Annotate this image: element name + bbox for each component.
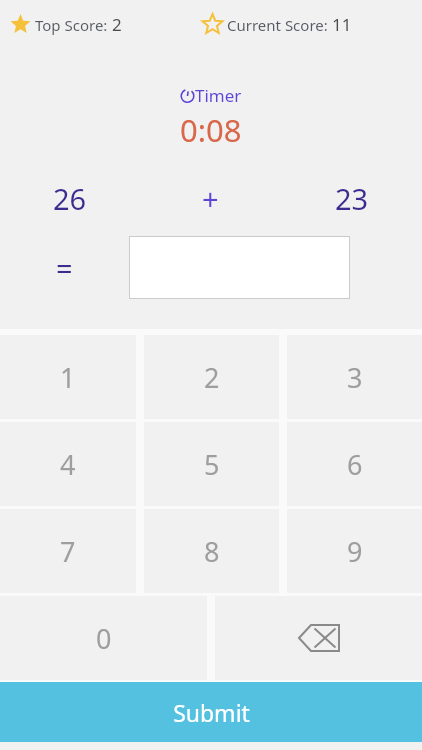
staticText: Timer [195, 84, 242, 107]
button[interactable]: 5 [144, 422, 279, 506]
button[interactable]: 7 [0, 509, 136, 593]
staticText: 0 [96, 620, 112, 657]
staticText: 2 [112, 13, 122, 36]
staticText: + [202, 179, 219, 218]
button[interactable]: Current Score: [200, 9, 354, 40]
staticText: Submit [173, 697, 250, 728]
staticText: 5 [204, 446, 220, 483]
staticText: 9 [347, 533, 363, 570]
staticText: 11 [332, 13, 352, 36]
staticText: 1 [60, 359, 76, 396]
staticText: 23 [335, 179, 369, 218]
button[interactable]: 3 [287, 335, 422, 419]
button[interactable]: 4 [0, 422, 136, 506]
button[interactable]: Top Score: [8, 9, 124, 40]
staticText: = [56, 248, 73, 287]
staticText: 0:08 [180, 109, 242, 151]
staticText: Top Score: [35, 15, 112, 35]
staticText: 26 [53, 179, 87, 218]
staticText: 3 [347, 359, 363, 396]
button[interactable]: 6 [287, 422, 422, 506]
button[interactable]: 9 [287, 509, 422, 593]
button[interactable]: Backspace [215, 596, 422, 680]
staticText: 7 [60, 533, 76, 570]
button[interactable]: 2 [144, 335, 279, 419]
button[interactable]: 8 [144, 509, 279, 593]
staticText: 6 [347, 446, 363, 483]
button[interactable]: 0 [0, 596, 207, 680]
staticText: 8 [204, 533, 220, 570]
staticText: 2 [204, 359, 220, 396]
button[interactable]: Submit [0, 682, 422, 742]
staticText: Current Score: [227, 15, 332, 35]
button[interactable]: 1 [0, 335, 136, 419]
staticText: 4 [60, 446, 76, 483]
